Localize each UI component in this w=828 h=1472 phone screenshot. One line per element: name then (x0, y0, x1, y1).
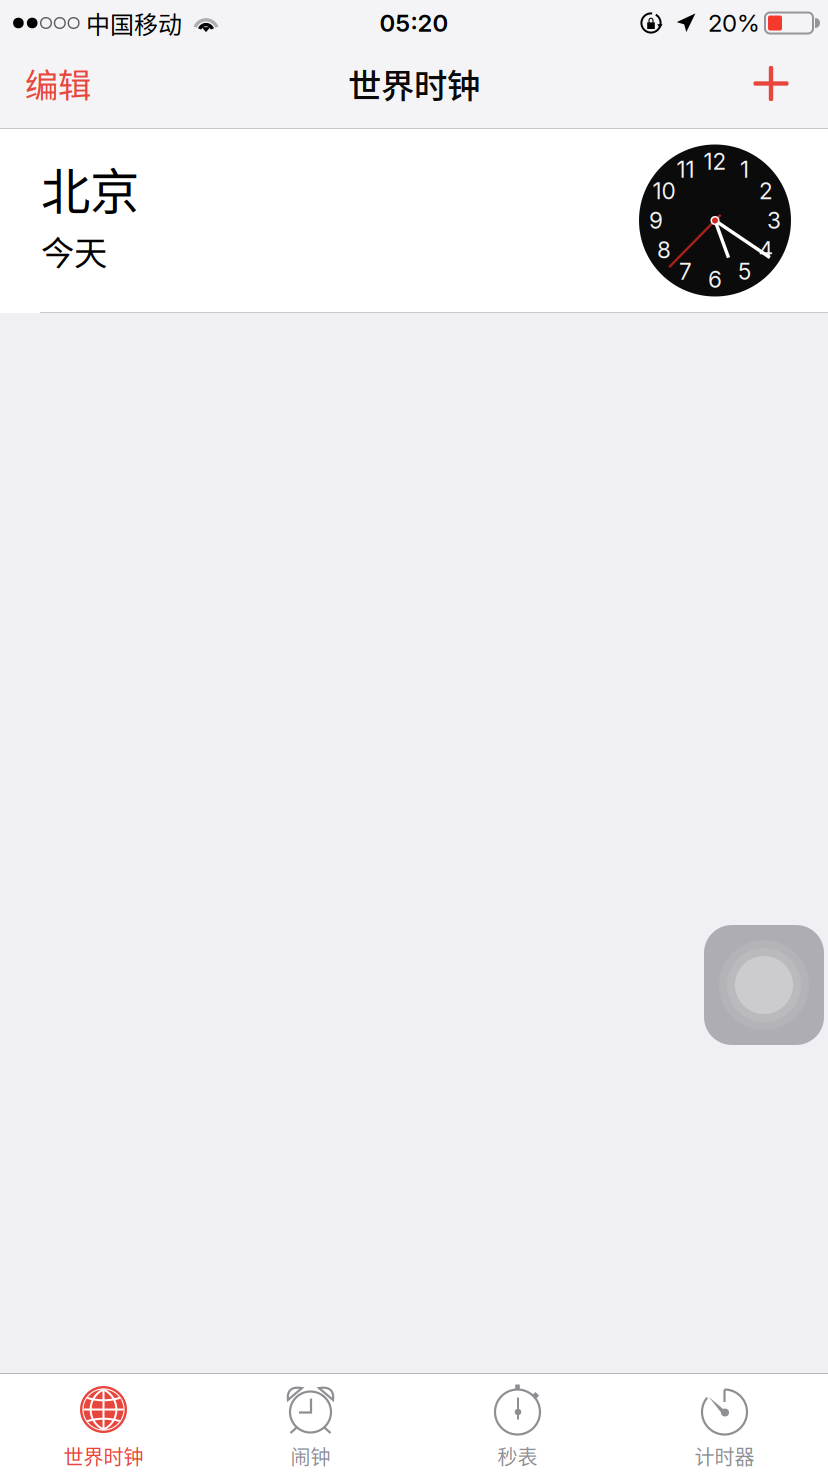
staticText: 9 (649, 207, 663, 234)
staticText: 闹钟 (290, 1441, 330, 1470)
staticText: 8 (657, 236, 671, 264)
staticText: 1 (740, 156, 749, 183)
staticText: 11 (676, 156, 694, 183)
staticText: 北京 (41, 152, 139, 223)
staticText: 世界时钟 (63, 1441, 143, 1470)
staticText: 05:20 (379, 8, 448, 37)
staticText: 编辑 (25, 59, 91, 107)
button[interactable]: 添加城市 (740, 52, 802, 121)
staticText: 10 (652, 177, 675, 205)
button[interactable]: 世界时钟 (0, 1373, 207, 1472)
staticText: 中国移动 (86, 6, 182, 40)
button[interactable]: 北京 (0, 129, 828, 312)
staticText: 4 (758, 236, 773, 264)
button[interactable]: 闹钟 (207, 1373, 414, 1472)
staticText: 2 (759, 177, 773, 205)
staticText: 今天 (41, 227, 107, 275)
staticText: 20% (708, 8, 760, 37)
staticText: 计时器 (694, 1441, 754, 1470)
button[interactable]: 计时器 (621, 1373, 828, 1472)
staticText: 世界时钟 (348, 59, 480, 108)
staticText: 12 (703, 148, 726, 175)
button[interactable]: 辅助触控 (704, 925, 824, 1045)
staticText: 7 (679, 258, 692, 285)
staticText: 6 (708, 266, 722, 293)
button[interactable]: 编辑 (13, 49, 103, 125)
staticText: 秒表 (497, 1441, 537, 1470)
staticText: 5 (738, 258, 751, 285)
button[interactable]: 秒表 (414, 1373, 621, 1472)
staticText: 3 (767, 207, 781, 234)
